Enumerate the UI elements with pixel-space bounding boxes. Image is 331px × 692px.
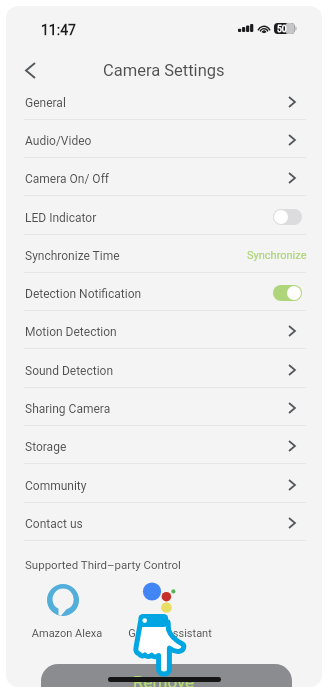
staticText: 50 — [277, 24, 287, 34]
staticText: Detection Notification — [25, 287, 142, 301]
staticText: Supported Third–party Control — [25, 558, 181, 571]
staticText: Audio/Video — [25, 134, 92, 148]
button[interactable]: Camera On/ Off — [6, 158, 322, 196]
button[interactable]: Storage — [6, 426, 322, 464]
button[interactable]: Switch on — [273, 285, 302, 301]
staticText: Sharing Camera — [25, 402, 111, 416]
button[interactable]: Contact us — [6, 503, 322, 541]
button[interactable]: Audio/Video — [6, 120, 322, 158]
button[interactable]: Sharing Camera — [6, 388, 322, 426]
button[interactable]: General — [6, 82, 322, 120]
button[interactable]: Sound Detection — [6, 350, 322, 388]
button[interactable]: Community — [6, 465, 322, 503]
staticText: Synchronize — [247, 249, 307, 262]
button[interactable]: Switch off — [273, 209, 302, 225]
staticText: Camera On/ Off — [25, 172, 109, 186]
button[interactable]: Google Assistant — [113, 577, 227, 647]
staticText: Contact us — [25, 517, 83, 531]
staticText: Synchronize Time — [25, 249, 120, 263]
button[interactable]: Motion Detection — [6, 311, 322, 349]
button[interactable]: Back — [12, 52, 48, 88]
staticText: Google Assistant — [113, 627, 227, 640]
staticText: LED Indicator — [25, 211, 97, 225]
button[interactable]: Amazon Alexa — [24, 577, 110, 647]
staticText: Camera Settings — [103, 61, 225, 80]
button[interactable]: LED Indicator — [6, 197, 322, 235]
staticText: Storage — [25, 440, 67, 454]
button[interactable]: Remove — [41, 664, 292, 687]
staticText: General — [25, 96, 66, 110]
staticText: Community — [25, 479, 87, 493]
staticText: Remove — [133, 672, 195, 687]
other: Tap pointer — [132, 610, 188, 678]
staticText: Amazon Alexa — [24, 627, 110, 640]
staticText: 11:47 — [41, 22, 76, 38]
button[interactable]: Detection Notification — [6, 273, 322, 311]
staticText: Sound Detection — [25, 364, 114, 378]
button[interactable]: Synchronize Time — [6, 235, 322, 273]
staticText: Motion Detection — [25, 325, 117, 339]
